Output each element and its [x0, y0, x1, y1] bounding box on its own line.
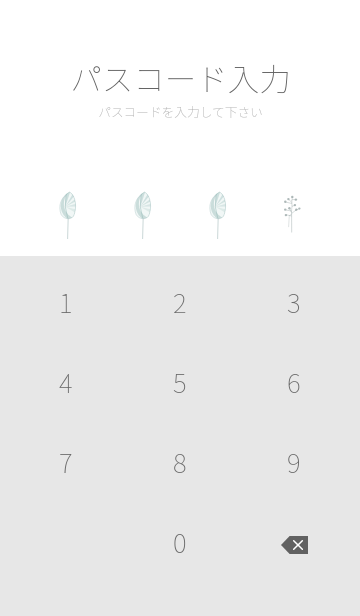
- staticText: 7: [59, 443, 73, 481]
- button[interactable]: 1: [9, 262, 123, 342]
- staticText: 3: [287, 283, 301, 321]
- staticText: 9: [287, 443, 301, 481]
- staticText: 1: [59, 283, 73, 321]
- button[interactable]: 7: [9, 422, 123, 502]
- button[interactable]: 0: [123, 502, 237, 582]
- staticText: 6: [287, 363, 301, 401]
- button[interactable]: 8: [123, 422, 237, 502]
- staticText: 4: [59, 363, 73, 401]
- staticText: 8: [173, 443, 187, 481]
- staticText: 5: [173, 363, 187, 401]
- staticText: 0: [173, 523, 187, 561]
- button[interactable]: Backspace: [237, 502, 351, 582]
- staticText: パスコードを入力して下さい: [98, 102, 263, 120]
- button[interactable]: 6: [237, 342, 351, 422]
- other: Backspace: [270, 521, 318, 569]
- staticText: パスコード入力: [70, 54, 291, 94]
- button[interactable]: 4: [9, 342, 123, 422]
- staticText: 2: [173, 283, 187, 321]
- button[interactable]: 5: [123, 342, 237, 422]
- button[interactable]: 2: [123, 262, 237, 342]
- button[interactable]: 9: [237, 422, 351, 502]
- button[interactable]: 3: [237, 262, 351, 342]
